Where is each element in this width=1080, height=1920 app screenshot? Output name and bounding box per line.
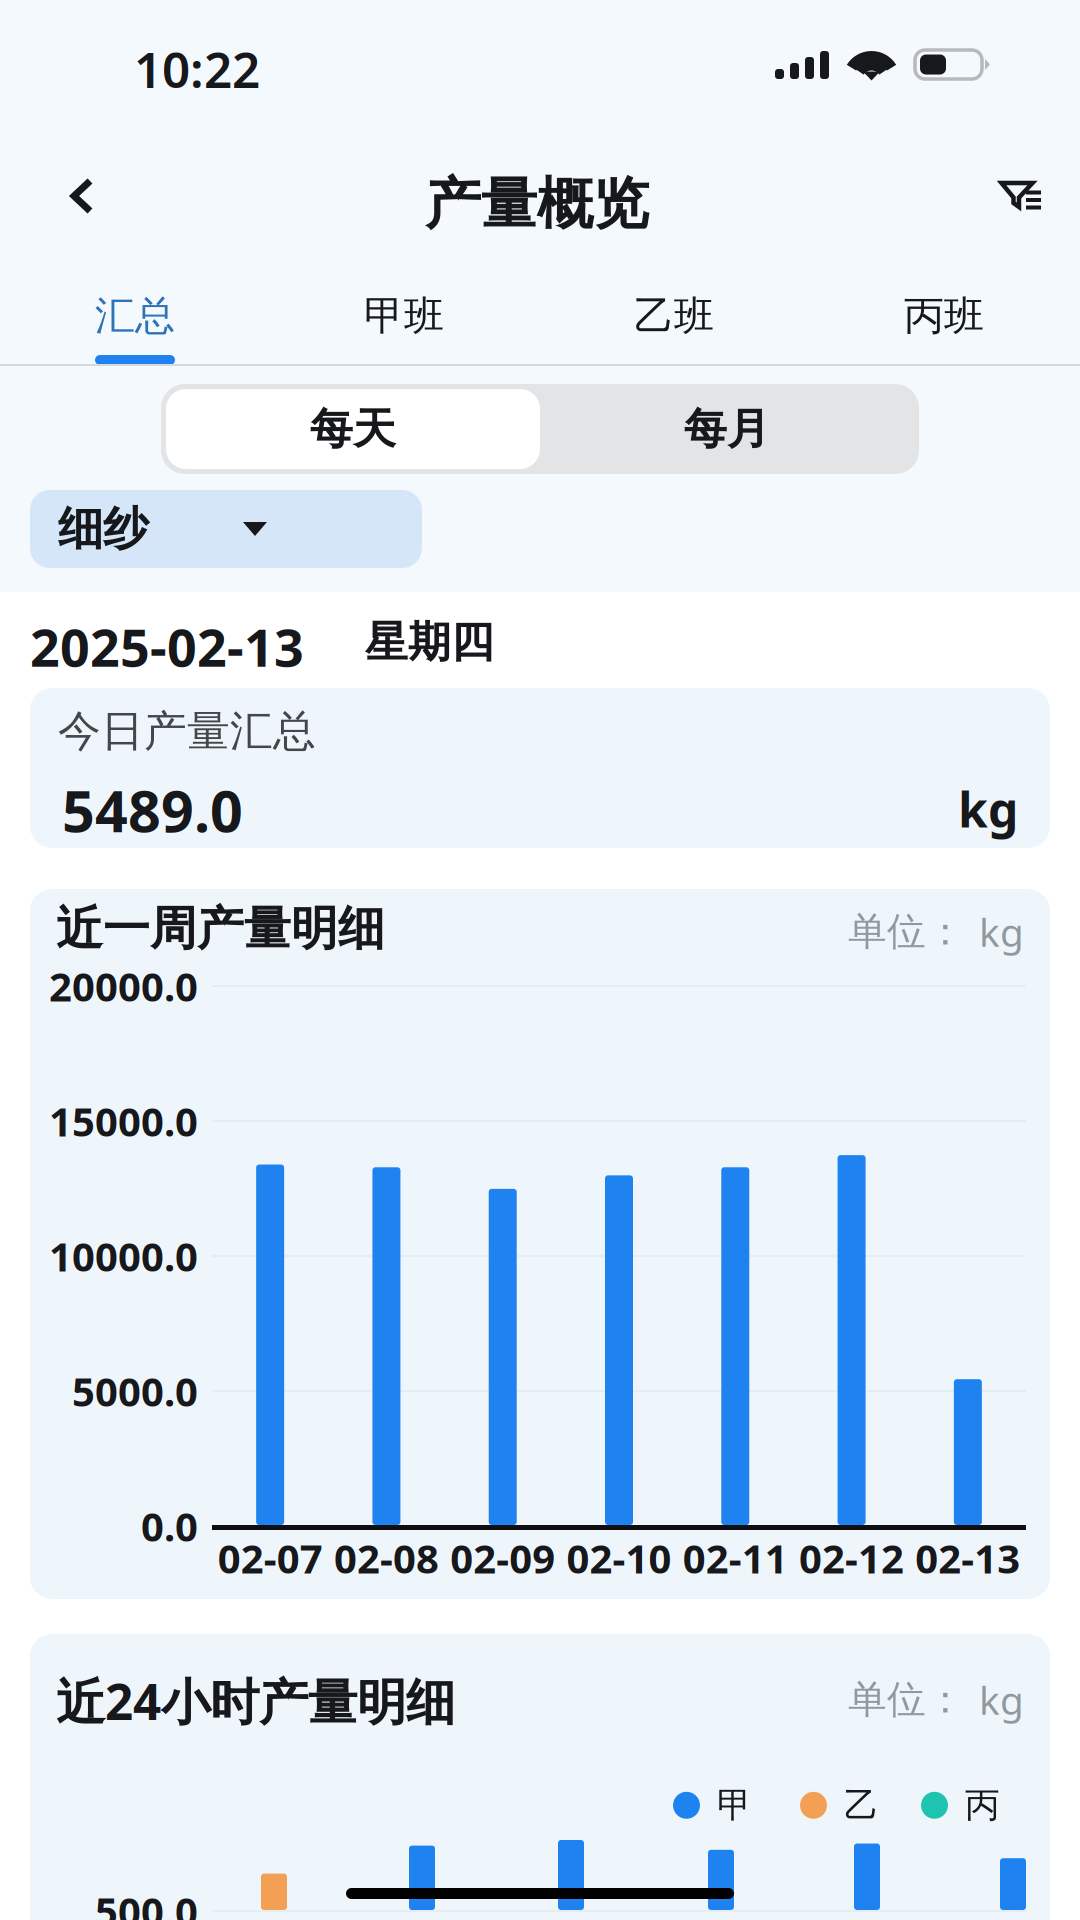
staticText: kg: [958, 777, 1018, 841]
button[interactable]: 甲班: [269, 239, 539, 364]
staticText: 10000.0: [49, 1229, 198, 1282]
staticText: 02-10: [566, 1531, 671, 1584]
staticText: 单位：: [848, 1676, 965, 1723]
staticText: 2025-02-13: [30, 612, 304, 681]
staticText: 02-09: [450, 1531, 555, 1584]
staticText: 丙: [965, 1784, 1000, 1827]
staticText: 甲: [717, 1784, 752, 1827]
staticText: 每天: [310, 403, 396, 455]
button[interactable]: 每天: [166, 389, 540, 469]
button[interactable]: 细纱: [30, 490, 422, 568]
button[interactable]: Filter: [966, 143, 1074, 247]
staticText: 丙班: [904, 291, 984, 340]
staticText: 0.0: [141, 1499, 198, 1552]
staticText: kg: [979, 1674, 1024, 1725]
staticText: 细纱: [58, 501, 148, 557]
staticText: 02-08: [334, 1531, 439, 1584]
staticText: 02-12: [799, 1531, 904, 1584]
button[interactable]: 丙班: [809, 239, 1079, 364]
staticText: 星期四: [365, 616, 494, 668]
staticText: 20000.0: [49, 959, 198, 1012]
staticText: 10:22: [134, 36, 260, 101]
staticText: 今日产量汇总: [58, 705, 316, 757]
staticText: kg: [979, 906, 1024, 957]
staticText: 近24小时产量明细: [56, 1668, 455, 1733]
staticText: 单位：: [848, 908, 965, 955]
staticText: 近一周产量明细: [56, 900, 385, 957]
staticText: 15000.0: [49, 1094, 198, 1147]
staticText: 产量概览: [425, 170, 649, 238]
staticText: 02-07: [218, 1531, 323, 1584]
staticText: 500.0: [95, 1884, 198, 1920]
staticText: 02-13: [915, 1531, 1020, 1584]
staticText: 乙: [844, 1784, 879, 1827]
button[interactable]: 每月: [540, 389, 914, 469]
staticText: 02-11: [683, 1531, 788, 1584]
button[interactable]: 乙班: [539, 239, 809, 364]
staticText: 汇总: [95, 291, 175, 340]
staticText: 乙班: [634, 291, 714, 340]
button[interactable]: Back: [28, 144, 136, 248]
staticText: 5000.0: [72, 1364, 198, 1417]
button[interactable]: 汇总: [0, 239, 270, 364]
staticText: 5489.0: [62, 772, 243, 848]
staticText: 甲班: [364, 291, 444, 340]
staticText: 每月: [684, 403, 770, 455]
